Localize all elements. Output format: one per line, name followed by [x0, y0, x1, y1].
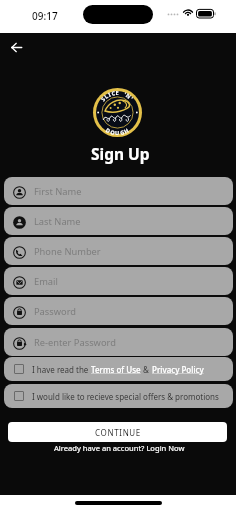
staticText: & — [141, 364, 152, 375]
button[interactable]: Phone Number — [4, 237, 233, 265]
staticText: I would like to recieve special offers &… — [32, 391, 219, 402]
staticText: Re-enter Password — [34, 336, 116, 349]
button[interactable]: Re-enter Password — [4, 328, 233, 356]
button[interactable]: Already have an account? Login Now — [1, 443, 236, 453]
staticText: Sign Up — [91, 143, 150, 164]
staticText: Already have an account? Login Now — [54, 443, 185, 453]
button[interactable]: I have read the — [4, 357, 233, 381]
button[interactable]: I would like to recieve special offers &… — [4, 384, 233, 408]
button[interactable]: Password — [4, 297, 233, 325]
button[interactable]: First Name — [4, 177, 233, 205]
staticText: Password — [34, 305, 77, 318]
button[interactable]: CONTINUE — [8, 422, 227, 442]
staticText: Phone Number — [34, 245, 101, 258]
staticText: Privacy Policy — [152, 364, 204, 375]
button[interactable]: Last Name — [4, 207, 233, 235]
staticText: CONTINUE — [95, 427, 141, 438]
staticText: 09:17 — [32, 9, 58, 23]
staticText: First Name — [34, 185, 82, 198]
staticText: Last Name — [34, 215, 81, 228]
staticText: I have read the — [32, 364, 91, 375]
staticText: Email — [34, 275, 58, 288]
staticText: Terms of Use — [91, 364, 141, 375]
button[interactable]: Back — [4, 35, 28, 59]
button[interactable]: Email — [4, 267, 233, 295]
